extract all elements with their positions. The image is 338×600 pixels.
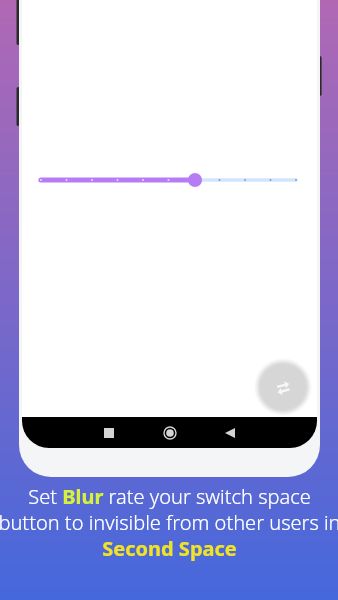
button[interactable]: Home [158,421,182,445]
button[interactable]: Recents [97,421,121,445]
button[interactable]: Back [218,421,242,445]
staticText: Set Blur rate your switch space button t… [0,483,338,562]
button[interactable]: Switch space [255,359,311,415]
